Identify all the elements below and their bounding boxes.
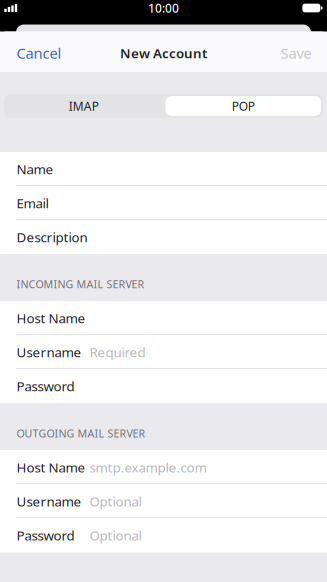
staticText: Optional (89, 526, 141, 544)
staticText: OUTGOING MAIL SERVER (16, 426, 145, 440)
staticText: POP (232, 98, 255, 114)
staticText: Password (16, 377, 74, 395)
staticText: Cancel (16, 43, 61, 63)
button[interactable]: Username (0, 484, 327, 518)
staticText: Optional (89, 492, 141, 510)
button[interactable]: Cancel (0, 34, 71, 72)
button[interactable]: IMAP (4, 94, 163, 118)
button[interactable]: POP (163, 94, 323, 118)
staticText: Password (16, 526, 74, 544)
staticText: Username (16, 492, 81, 510)
staticText: Host Name (16, 458, 85, 476)
staticText: INCOMING MAIL SERVER (16, 277, 144, 291)
staticText: Description (16, 228, 87, 246)
staticText: Save (280, 43, 311, 63)
button[interactable]: Password (0, 518, 327, 552)
button[interactable]: Name (0, 152, 327, 186)
button[interactable]: Host Name (0, 450, 327, 484)
button[interactable]: Save (270, 34, 327, 72)
staticText: 10:00 (148, 0, 179, 16)
staticText: smtp.example.com (89, 458, 206, 476)
button[interactable]: Host Name (0, 301, 327, 335)
staticText: Required (89, 343, 145, 361)
button[interactable]: Description (0, 220, 327, 254)
staticText: Username (16, 343, 81, 361)
staticText: New Account (120, 44, 207, 62)
staticText: IMAP (69, 98, 99, 114)
button[interactable]: Email (0, 186, 327, 220)
staticText: Name (16, 160, 53, 178)
button[interactable]: Username (0, 335, 327, 369)
staticText: Email (16, 194, 48, 212)
staticText: Host Name (16, 309, 85, 327)
button[interactable]: Password (0, 369, 327, 403)
